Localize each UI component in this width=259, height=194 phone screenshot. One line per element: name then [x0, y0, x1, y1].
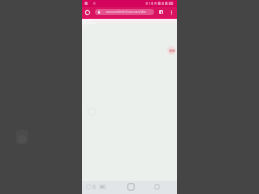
- button[interactable]: Home: [113, 181, 145, 194]
- staticText: www.websitehost.com/abc: [101, 10, 151, 14]
- button[interactable]: Home: [83, 8, 91, 16]
- button[interactable]: Back: [82, 181, 113, 194]
- button[interactable]: Tabs: [159, 10, 163, 14]
- button[interactable]: Chat: [167, 46, 176, 55]
- button[interactable]: Recents: [145, 181, 177, 194]
- button[interactable]: www.websitehost.com/abc: [95, 9, 154, 15]
- button[interactable]: More options: [168, 9, 175, 16]
